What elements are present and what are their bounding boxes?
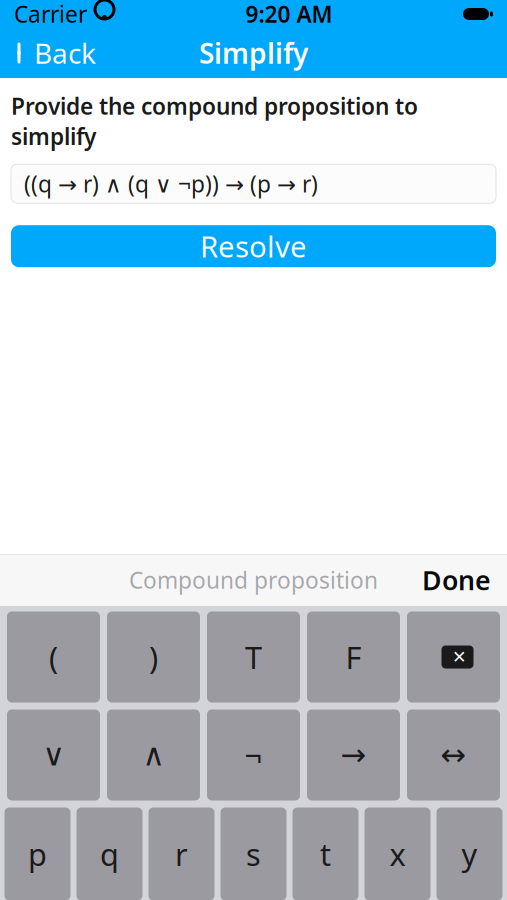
staticText: Carrier (14, 0, 87, 29)
button[interactable]: T (207, 611, 300, 702)
staticText: 9:20 AM (245, 0, 332, 29)
staticText: r (175, 834, 188, 874)
staticText: Provide the compound proposition to simp… (11, 91, 418, 151)
button[interactable]: ∧ (107, 709, 200, 800)
button[interactable]: → (307, 709, 400, 800)
staticText: Compound proposition (129, 565, 378, 595)
button[interactable]: x (364, 807, 430, 900)
staticText: → (340, 738, 366, 772)
staticText: Simplify (199, 34, 308, 72)
staticText: x (389, 834, 405, 874)
button[interactable]: Done (406, 554, 507, 606)
staticText: s (246, 834, 261, 874)
staticText: ) (149, 637, 158, 677)
staticText: q (100, 834, 119, 874)
button[interactable]: Back (0, 28, 110, 78)
staticText: Done (422, 562, 491, 598)
button[interactable]: ¬ (207, 709, 300, 800)
staticText: p (28, 834, 47, 874)
staticText: ↔ (440, 738, 466, 772)
staticText: ( (49, 637, 58, 677)
button[interactable]: ( (7, 611, 100, 702)
button[interactable]: F (307, 611, 400, 702)
staticText: t (320, 834, 331, 874)
button[interactable]: y (436, 807, 502, 900)
staticText: F (345, 637, 361, 677)
staticText: y (461, 834, 477, 874)
staticText: ✕ (452, 647, 467, 667)
staticText: ∧ (142, 738, 164, 772)
button[interactable]: p (4, 807, 70, 900)
button[interactable]: Delete (407, 611, 500, 702)
staticText: ((q → r) ∧ (q ∨ ¬p)) → (p → r) (24, 169, 318, 199)
button[interactable]: q (76, 807, 142, 900)
staticText: Back (34, 34, 96, 72)
staticText: ∨ (42, 738, 64, 772)
button[interactable]: t (292, 807, 358, 900)
button[interactable]: r (148, 807, 214, 900)
button[interactable]: Resolve (11, 225, 496, 267)
button[interactable]: ↔ (407, 709, 500, 800)
button[interactable]: s (220, 807, 286, 900)
button[interactable]: ∨ (7, 709, 100, 800)
staticText: ¬ (244, 735, 262, 775)
staticText: T (245, 637, 262, 677)
staticText: Resolve (200, 227, 307, 266)
button[interactable]: ) (107, 611, 200, 702)
